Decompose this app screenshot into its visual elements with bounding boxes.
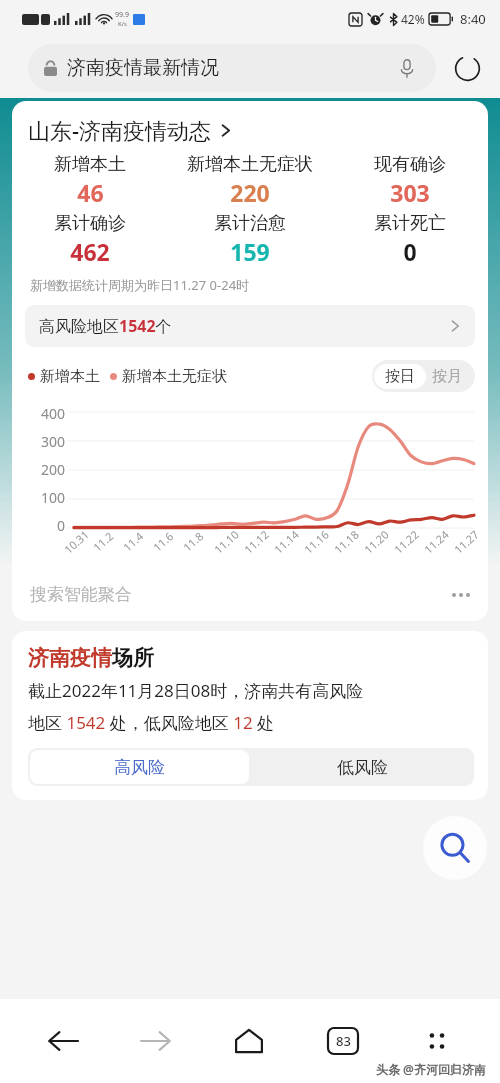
staticText: 高风险地区1542个 (39, 315, 172, 337)
staticText: 100 (41, 488, 66, 504)
staticText: 11.6 (150, 529, 176, 554)
staticText: 10.31 (61, 526, 92, 557)
staticText: 462 (70, 236, 110, 267)
staticText: 累计死亡 (374, 212, 446, 235)
staticText: 400 (41, 404, 66, 420)
staticText: 8:40 (460, 10, 486, 28)
staticText: 新增本土无症状 (122, 367, 227, 386)
staticText: 现有确诊 (374, 153, 446, 176)
staticText: 0 (403, 236, 417, 267)
button[interactable]: More (390, 999, 484, 1083)
button[interactable]: 高风险 (30, 750, 249, 784)
staticText: 83 (336, 1032, 351, 1050)
staticText: 0 (57, 516, 66, 532)
staticText: 11.8 (180, 529, 206, 554)
staticText: 46 (77, 177, 104, 208)
staticText: 累计治愈 (214, 212, 286, 235)
staticText: 42% (401, 11, 425, 27)
button[interactable]: 高风险地区1542个 (25, 305, 475, 347)
staticText: 累计确诊 (54, 212, 126, 235)
button[interactable]: 按月 (428, 367, 475, 386)
staticText: 按日 (385, 367, 415, 386)
staticText: 300 (41, 432, 66, 448)
staticText: 11.14 (271, 526, 302, 557)
staticText: 11.18 (331, 526, 362, 557)
staticText: 高风险 (114, 757, 165, 778)
staticText: 新增本土无症状 (187, 153, 313, 176)
button[interactable]: 按日 (374, 364, 426, 389)
staticText: 11.24 (421, 526, 452, 557)
staticText: 11.16 (301, 526, 332, 557)
staticText: 159 (230, 236, 270, 267)
staticText: 11.22 (391, 526, 422, 557)
staticText: 303 (390, 177, 430, 208)
button[interactable]: Refresh (450, 51, 484, 85)
staticText: K/s (118, 20, 127, 28)
button[interactable]: 济南疫情最新情况 (28, 44, 436, 92)
button[interactable]: Tabs (296, 999, 390, 1083)
staticText: 山东-济南疫情动态 (28, 115, 212, 145)
button[interactable]: Back (16, 999, 109, 1083)
staticText: 200 (41, 460, 66, 476)
staticText: 济南疫情最新情况 (67, 56, 219, 80)
staticText: 11.20 (361, 526, 392, 557)
staticText: 济南疫情场所 (28, 645, 154, 671)
staticText: 11.12 (241, 526, 272, 557)
button[interactable]: 山东-济南疫情动态 (12, 101, 488, 151)
button[interactable]: Search (423, 816, 487, 880)
staticText: 头条 @齐河回归济南 (376, 1061, 486, 1077)
staticText: 11.2 (90, 529, 116, 554)
staticText: 99.9 (115, 10, 129, 20)
button[interactable]: Home (202, 999, 296, 1083)
staticText: 新增本土 (40, 367, 100, 386)
staticText: 截止2022年11月28日08时，济南共有高风险 地区 1542 处，低风险地区… (28, 679, 364, 734)
staticText: 11.10 (211, 526, 242, 557)
staticText: 低风险 (337, 757, 388, 778)
staticText: 新增数据统计周期为昨日11.27 0-24时 (30, 276, 250, 294)
staticText: 220 (230, 177, 270, 208)
button[interactable]: Forward (109, 999, 202, 1083)
staticText: 11.4 (120, 529, 146, 554)
staticText: 新增本土 (54, 153, 126, 176)
staticText: 按月 (432, 367, 462, 386)
button[interactable]: Voice search (394, 55, 420, 81)
button[interactable]: 低风险 (251, 748, 474, 786)
staticText: 搜索智能聚合 (30, 584, 132, 605)
staticText: 11.27 (451, 526, 482, 557)
button[interactable]: 搜索智能聚合 (12, 578, 488, 621)
